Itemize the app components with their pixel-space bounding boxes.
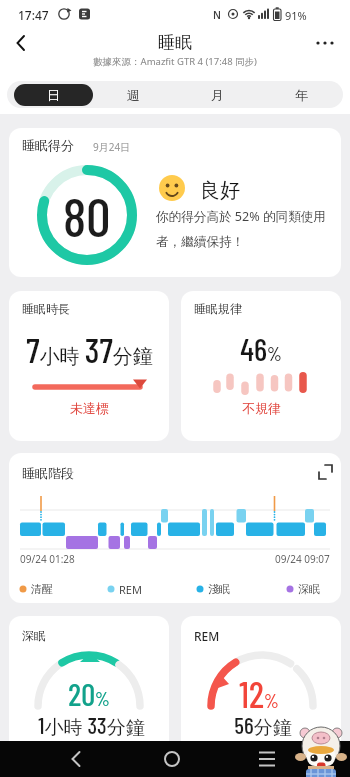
staticText: 良好 (200, 178, 240, 203)
button[interactable]: 睡眠規律 (181, 291, 341, 441)
button[interactable]: 年 (259, 81, 343, 108)
staticText: REM (119, 582, 142, 597)
staticText: 不規律 (242, 400, 281, 416)
button[interactable] (314, 459, 340, 485)
staticText: 46% (240, 330, 282, 367)
button[interactable] (251, 741, 283, 777)
button[interactable]: 睡眠時長 (9, 291, 169, 441)
staticText: 91% (285, 8, 307, 23)
staticText: 淺眠 (208, 582, 230, 596)
staticText: 12% (239, 672, 279, 715)
button[interactable]: 深眠 (9, 616, 169, 766)
staticText: 56分鐘 (234, 711, 292, 740)
staticText: 睡眠時長 (22, 301, 70, 316)
staticText: 9月24日 (93, 140, 131, 154)
button[interactable]: 月 (175, 81, 259, 108)
button[interactable]: REM (181, 616, 341, 766)
staticText: 未達標 (70, 400, 109, 416)
staticText: 09/24 01:28 (20, 552, 75, 566)
staticText: 者，繼續保持！ (156, 234, 245, 250)
staticText: 你的得分高於 52% 的同類使用 (156, 208, 326, 225)
staticText: 睡眠得分 (22, 137, 74, 153)
staticText: 睡眠 (158, 32, 192, 53)
button[interactable]: 睡眠階段 (9, 453, 341, 603)
staticText: 09/24 09:07 (275, 552, 330, 566)
staticText: 月 (211, 87, 224, 103)
button[interactable]: 睡眠得分 (9, 128, 341, 277)
button[interactable]: 日 (14, 84, 93, 106)
staticText: 週 (127, 87, 140, 103)
button[interactable] (156, 741, 188, 777)
staticText: N (213, 8, 221, 22)
button[interactable] (312, 32, 340, 54)
staticText: 深眠 (22, 628, 46, 643)
staticText: 1小時 33分鐘 (38, 711, 145, 740)
button[interactable] (8, 30, 36, 56)
staticText: 清醒 (31, 582, 53, 596)
button[interactable] (60, 741, 92, 777)
staticText: 17:47 (18, 7, 49, 23)
staticText: 睡眠規律 (194, 301, 242, 316)
staticText: 年 (295, 87, 308, 103)
staticText: 深眠 (298, 582, 320, 596)
button[interactable]: 週 (91, 81, 175, 108)
staticText: 數據來源：Amazfit GTR 4 (17:48 同步) (93, 55, 257, 68)
staticText: 20% (68, 675, 110, 712)
staticText: 7小時 37分鐘 (26, 328, 153, 370)
staticText: REM (194, 628, 220, 644)
staticText: 80 (63, 183, 111, 248)
staticText: 日 (47, 87, 60, 103)
staticText: 睡眠階段 (22, 465, 74, 481)
